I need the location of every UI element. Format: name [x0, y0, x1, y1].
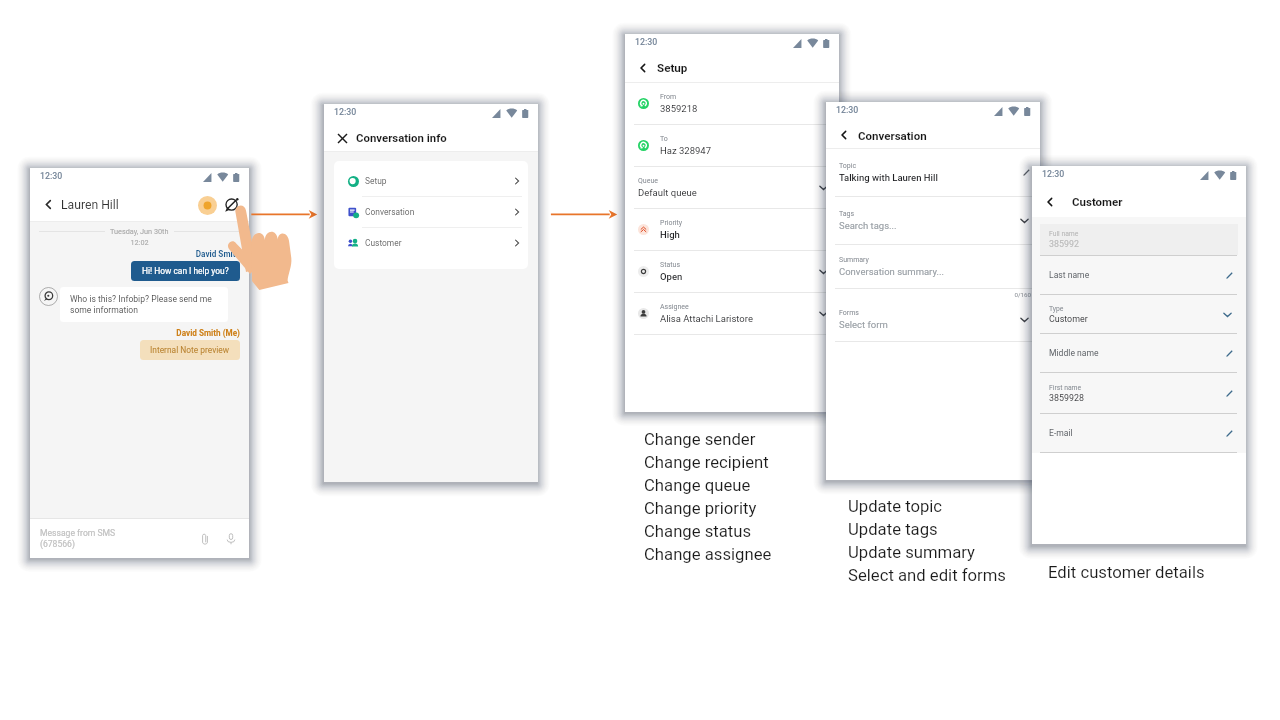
button[interactable]: Priority: [625, 209, 839, 251]
button[interactable]: Full name: [1032, 224, 1246, 256]
staticText: David Smith (Me): [39, 328, 240, 338]
button[interactable]: Conversation: [334, 197, 528, 228]
staticText: Internal Note preview: [150, 345, 230, 355]
staticText: Change sender Change recipient Change qu…: [644, 430, 772, 564]
button[interactable]: Attach file: [195, 529, 215, 549]
button[interactable]: Summary: [826, 245, 1040, 298]
staticText: David Smith: [39, 249, 240, 259]
staticText: Customer: [1049, 314, 1088, 324]
staticText: 12:30: [40, 171, 63, 181]
staticText: 12:30: [334, 107, 357, 117]
staticText: 12:30: [836, 105, 859, 115]
staticText: Who is this? Infobip? Please send me som…: [70, 294, 220, 315]
staticText: Full name: [1049, 230, 1079, 238]
staticText: 3859218: [660, 103, 698, 114]
staticText: 12:30: [1042, 169, 1065, 179]
staticText: 3859928: [1049, 393, 1084, 403]
staticText: Status: [660, 261, 681, 269]
staticText: Search tags...: [839, 220, 897, 231]
staticText: Customer: [365, 238, 402, 248]
staticText: Setup: [365, 176, 387, 186]
staticText: Setup: [657, 61, 688, 75]
staticText: Middle name: [1049, 348, 1099, 358]
staticText: 0/160: [826, 291, 1031, 298]
staticText: Type: [1049, 305, 1064, 313]
staticText: Default queue: [638, 187, 697, 198]
staticText: Priority: [660, 219, 683, 227]
staticText: Message from SMS (678566): [40, 528, 195, 549]
staticText: Update topic Update tags Update summary …: [848, 497, 1006, 585]
staticText: First name: [1049, 384, 1082, 392]
button[interactable]: Tags: [826, 197, 1040, 245]
button[interactable]: Conversation info: [221, 194, 243, 216]
button[interactable]: Back: [635, 60, 651, 76]
button[interactable]: Type: [1032, 295, 1246, 334]
staticText: E-mail: [1049, 428, 1073, 438]
staticText: 385992: [1049, 239, 1079, 249]
staticText: Open: [660, 271, 683, 282]
staticText: Forms: [839, 309, 859, 317]
staticText: Summary: [839, 256, 869, 264]
button[interactable]: Back: [40, 196, 57, 213]
button[interactable]: Setup: [334, 166, 528, 197]
staticText: Customer: [1072, 195, 1123, 208]
staticText: Conversation: [858, 129, 927, 142]
staticText: Tuesday, Jun 30th: [110, 227, 169, 236]
button[interactable]: Queue: [625, 167, 839, 209]
staticText: Talking with Lauren Hill: [839, 172, 938, 183]
staticText: Last name: [1049, 270, 1090, 280]
staticText: Select form: [839, 319, 888, 330]
staticText: High: [660, 229, 680, 240]
staticText: To: [660, 135, 668, 143]
button[interactable]: Status: [196, 194, 218, 216]
staticText: 12:30: [635, 37, 658, 47]
staticText: 12:02: [39, 238, 240, 247]
staticText: Alisa Attachi Laristore: [660, 313, 753, 324]
staticText: Queue: [638, 177, 658, 185]
staticText: Tags: [839, 210, 855, 218]
button[interactable]: Back: [836, 127, 852, 143]
button[interactable]: Forms: [826, 298, 1040, 342]
button[interactable]: Back: [1042, 194, 1058, 210]
staticText: Conversation summary...: [839, 266, 944, 277]
button[interactable]: To: [625, 125, 839, 167]
button[interactable]: E-mail: [1032, 414, 1246, 453]
button[interactable]: Topic: [826, 149, 1040, 197]
button[interactable]: Middle name: [1032, 334, 1246, 373]
staticText: From: [660, 93, 677, 101]
button[interactable]: From: [625, 83, 839, 125]
staticText: Topic: [839, 162, 857, 170]
staticText: Conversation info: [356, 131, 447, 144]
button[interactable]: Close: [334, 130, 350, 146]
button[interactable]: Status: [625, 251, 839, 293]
staticText: Assignee: [660, 303, 689, 311]
staticText: Haz 328947: [660, 145, 712, 156]
button[interactable]: First name: [1032, 373, 1246, 414]
button[interactable]: Voice message: [221, 529, 241, 549]
button[interactable]: Customer: [334, 228, 528, 258]
staticText: Edit customer details: [1048, 563, 1205, 583]
staticText: Conversation: [365, 207, 415, 217]
staticText: Lauren Hill: [61, 198, 119, 212]
staticText: Hi! How can I help you?: [142, 266, 229, 276]
button[interactable]: Last name: [1032, 256, 1246, 295]
button[interactable]: Assignee: [625, 293, 839, 335]
